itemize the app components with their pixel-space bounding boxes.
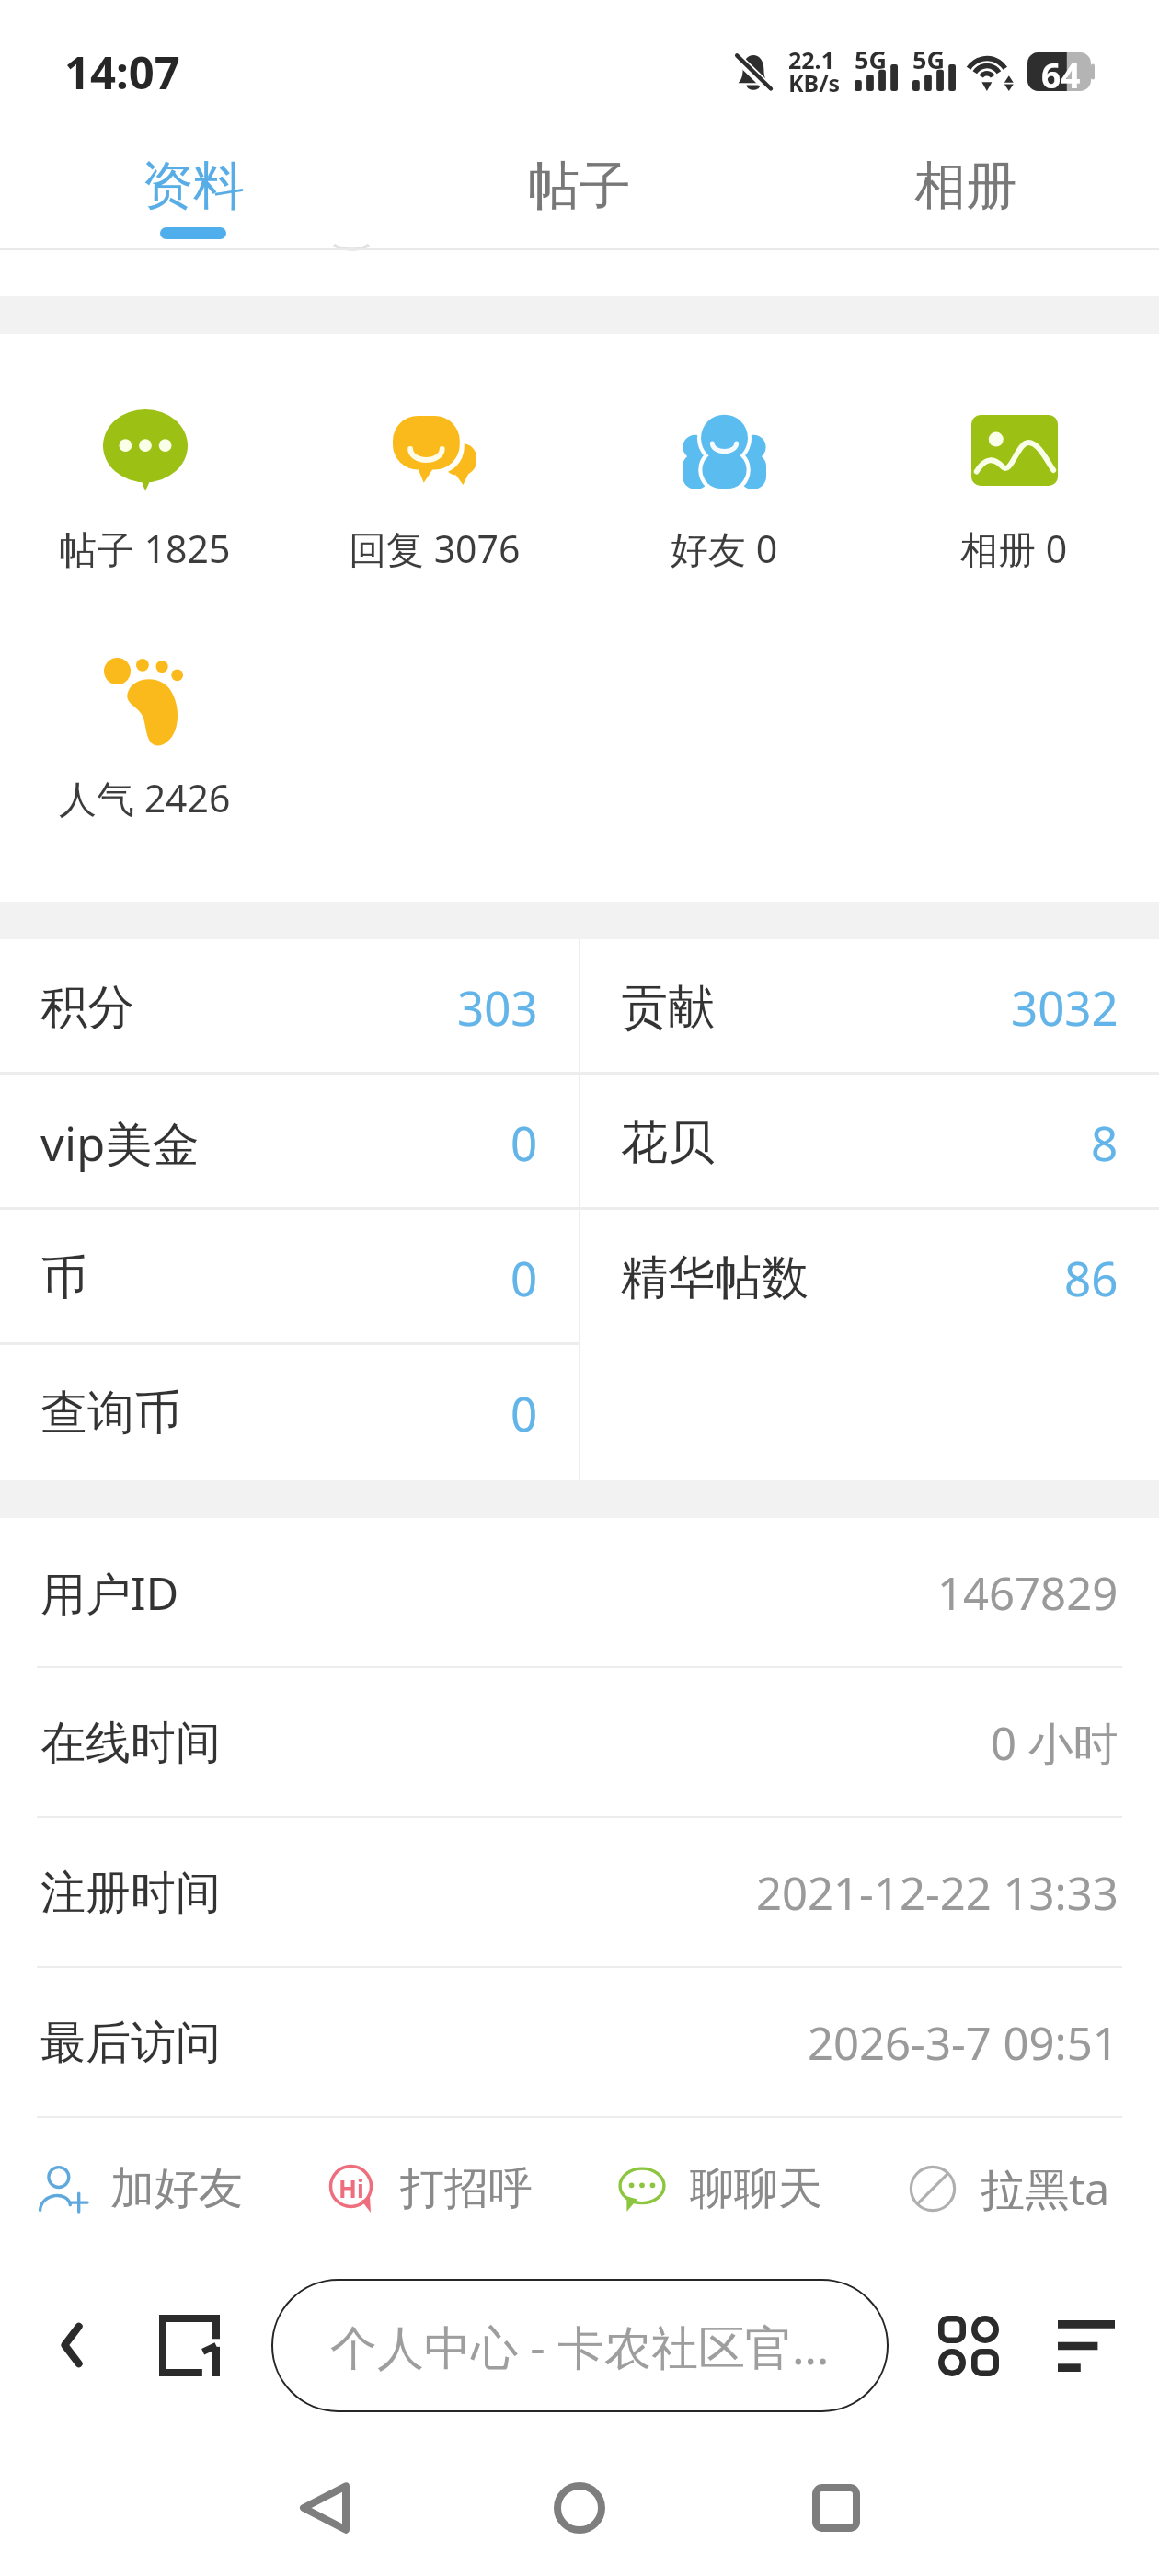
staticText: 303: [457, 975, 538, 1039]
staticText: 加好友: [110, 2161, 243, 2216]
button[interactable]: 帖子: [386, 110, 773, 250]
staticText: 2026-3-7 09:51: [808, 2012, 1119, 2074]
button[interactable]: 在线时间: [0, 1668, 1159, 1818]
button[interactable]: 注册时间: [0, 1818, 1159, 1968]
staticText: 64: [1041, 52, 1081, 90]
button[interactable]: Tabs: [147, 2303, 232, 2387]
button[interactable]: 花贝: [580, 1075, 1159, 1210]
staticText: 8: [1091, 1110, 1119, 1174]
staticText: 帖子 1825: [59, 523, 231, 574]
staticText: 注册时间: [40, 1865, 221, 1922]
staticText: 好友 0: [671, 523, 778, 574]
staticText: 精华帖数: [621, 1248, 809, 1307]
staticText: 最后访问: [40, 2015, 221, 2072]
staticText: KB/s: [788, 67, 841, 98]
button[interactable]: 回复 3076: [290, 395, 579, 505]
staticText: 聊聊天: [690, 2161, 822, 2216]
button[interactable]: Hi: [290, 2161, 579, 2216]
button[interactable]: 最后访问: [0, 1968, 1159, 2118]
staticText: 帖子: [528, 154, 631, 219]
button[interactable]: 人气 2426: [0, 646, 290, 756]
staticText: 打招呼: [400, 2161, 533, 2216]
staticText: 查询币: [40, 1384, 181, 1443]
button[interactable]: Apps: [928, 2306, 1009, 2386]
button[interactable]: 用户ID: [0, 1518, 1159, 1668]
staticText: vip美金: [40, 1110, 200, 1175]
staticText: 在线时间: [40, 1715, 221, 1772]
staticText: 相册 0: [960, 523, 1068, 574]
button[interactable]: 拉黑ta: [869, 2158, 1159, 2219]
button[interactable]: 相册 0: [869, 395, 1159, 505]
staticText: 5G: [855, 42, 887, 76]
staticText: 贡献: [621, 978, 715, 1037]
button[interactable]: 币: [0, 1210, 579, 1345]
staticText: 积分: [40, 978, 134, 1037]
button[interactable]: 加好友: [0, 2161, 290, 2216]
button[interactable]: 好友 0: [579, 395, 869, 505]
button[interactable]: Back: [33, 2306, 110, 2384]
button[interactable]: Home: [526, 2455, 633, 2561]
staticText: 0: [511, 1381, 538, 1444]
staticText: 86: [1064, 1246, 1119, 1309]
staticText: 5G: [912, 42, 945, 76]
staticText: 0: [511, 1246, 538, 1309]
staticText: 1467829: [937, 1562, 1119, 1624]
button[interactable]: 积分: [0, 939, 579, 1075]
button[interactable]: 相册: [773, 110, 1159, 250]
staticText: 2021-12-22 13:33: [756, 1862, 1119, 1924]
staticText: 人气 2426: [59, 772, 231, 823]
button[interactable]: 聊聊天: [579, 2161, 869, 2216]
button[interactable]: vip美金: [0, 1075, 579, 1210]
button[interactable]: Recents: [783, 2455, 889, 2561]
staticText: 用户ID: [40, 1562, 179, 1624]
staticText: 相册: [914, 154, 1017, 219]
staticText: 0: [511, 1110, 538, 1174]
button[interactable]: Back: [270, 2455, 377, 2561]
button[interactable]: 帖子 1825: [0, 395, 290, 505]
button[interactable]: 精华帖数: [580, 1210, 1159, 1345]
staticText: 花贝: [621, 1113, 715, 1172]
staticText: 资料: [142, 154, 245, 219]
staticText: Hi: [339, 2172, 364, 2204]
staticText: 币: [40, 1248, 87, 1307]
staticText: 回复 3076: [349, 523, 521, 574]
button[interactable]: 个人中心 - 卡农社区官…: [271, 2279, 889, 2412]
button[interactable]: 查询币: [0, 1345, 579, 1480]
staticText: 个人中心 - 卡农社区官…: [330, 2314, 830, 2378]
staticText: 22.1: [788, 44, 834, 75]
staticText: 3032: [1011, 975, 1119, 1039]
button[interactable]: Menu: [1047, 2306, 1126, 2386]
staticText: 拉黑ta: [981, 2158, 1110, 2219]
button[interactable]: 资料: [0, 110, 386, 250]
staticText: 14:07: [64, 41, 180, 103]
button[interactable]: 贡献: [580, 939, 1159, 1075]
staticText: 0 小时: [991, 1712, 1119, 1774]
